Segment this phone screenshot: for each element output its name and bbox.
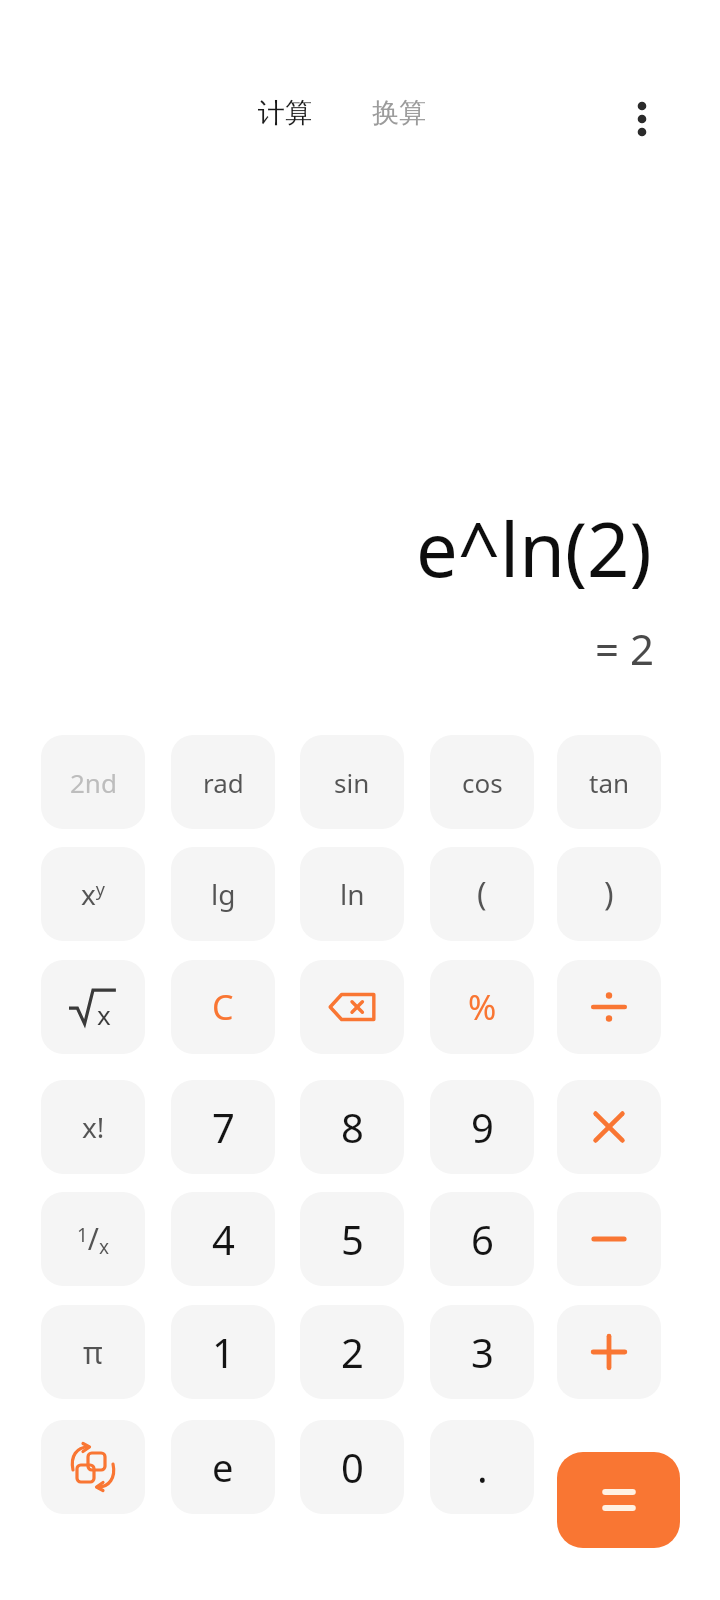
button[interactable]: xy xyxy=(41,847,145,941)
staticText: 8 xyxy=(341,1100,364,1154)
button[interactable]: Minus xyxy=(557,1192,661,1286)
button[interactable]: % xyxy=(430,960,534,1054)
staticText: 3 xyxy=(471,1325,494,1379)
button[interactable]: Unit convert xyxy=(41,1420,145,1514)
button[interactable]: 7 xyxy=(171,1080,275,1174)
staticText: 9 xyxy=(471,1100,494,1154)
staticText: e xyxy=(212,1441,234,1493)
staticText: C xyxy=(212,984,234,1030)
button[interactable]: tan xyxy=(557,735,661,829)
staticText: ( xyxy=(477,872,487,916)
staticText: rad xyxy=(203,765,244,800)
button[interactable]: x! xyxy=(41,1080,145,1174)
button[interactable]: e xyxy=(171,1420,275,1514)
staticText: e^ln(2) xyxy=(416,498,652,599)
button[interactable]: 6 xyxy=(430,1192,534,1286)
staticText: ) xyxy=(604,872,614,916)
staticText: 1/x xyxy=(77,1218,110,1260)
button[interactable]: 3 xyxy=(430,1305,534,1399)
button[interactable]: 4 xyxy=(171,1192,275,1286)
staticText: xy xyxy=(81,875,105,913)
button[interactable]: Backspace xyxy=(300,960,404,1054)
button[interactable]: 1/x xyxy=(41,1192,145,1286)
staticText: 6 xyxy=(471,1212,494,1266)
button[interactable]: lg xyxy=(171,847,275,941)
button[interactable]: Divide xyxy=(557,960,661,1054)
staticText: 计算 xyxy=(258,96,312,130)
staticText: 4 xyxy=(212,1212,235,1266)
staticText: sin xyxy=(334,765,370,800)
button[interactable]: 计算 xyxy=(250,92,320,134)
button[interactable]: π xyxy=(41,1305,145,1399)
button[interactable]: . xyxy=(430,1420,534,1514)
button[interactable]: ) xyxy=(557,847,661,941)
button[interactable]: Equals xyxy=(557,1452,680,1548)
staticText: ln xyxy=(340,875,365,913)
button[interactable]: 1 xyxy=(171,1305,275,1399)
button[interactable]: sin xyxy=(300,735,404,829)
button[interactable]: 0 xyxy=(300,1420,404,1514)
staticText: π xyxy=(83,1332,103,1373)
staticText: = 2 xyxy=(595,620,654,677)
staticText: 5 xyxy=(341,1212,364,1266)
staticText: 0 xyxy=(341,1440,364,1494)
button[interactable]: Plus xyxy=(557,1305,661,1399)
staticText: 换算 xyxy=(372,96,426,130)
button[interactable]: More options xyxy=(618,95,666,143)
button[interactable]: cos xyxy=(430,735,534,829)
staticText: cos xyxy=(462,765,503,800)
button[interactable]: 2nd xyxy=(41,735,145,829)
staticText: tan xyxy=(589,765,630,800)
button[interactable]: 5 xyxy=(300,1192,404,1286)
staticText: % xyxy=(468,984,497,1030)
button[interactable]: Square root xyxy=(41,960,145,1054)
staticText: 7 xyxy=(212,1100,235,1154)
button[interactable]: rad xyxy=(171,735,275,829)
button[interactable]: C xyxy=(171,960,275,1054)
button[interactable]: 9 xyxy=(430,1080,534,1174)
staticText: lg xyxy=(211,875,236,913)
staticText: x! xyxy=(82,1108,105,1146)
button[interactable]: ( xyxy=(430,847,534,941)
staticText: 2nd xyxy=(70,765,117,800)
button[interactable]: ln xyxy=(300,847,404,941)
staticText: . xyxy=(477,1440,488,1494)
staticText: x xyxy=(97,997,111,1032)
button[interactable]: 换算 xyxy=(364,92,434,134)
button[interactable]: 2 xyxy=(300,1305,404,1399)
button[interactable]: 8 xyxy=(300,1080,404,1174)
button[interactable]: Multiply xyxy=(557,1080,661,1174)
staticText: 1 xyxy=(212,1325,235,1379)
staticText: 2 xyxy=(341,1325,364,1379)
